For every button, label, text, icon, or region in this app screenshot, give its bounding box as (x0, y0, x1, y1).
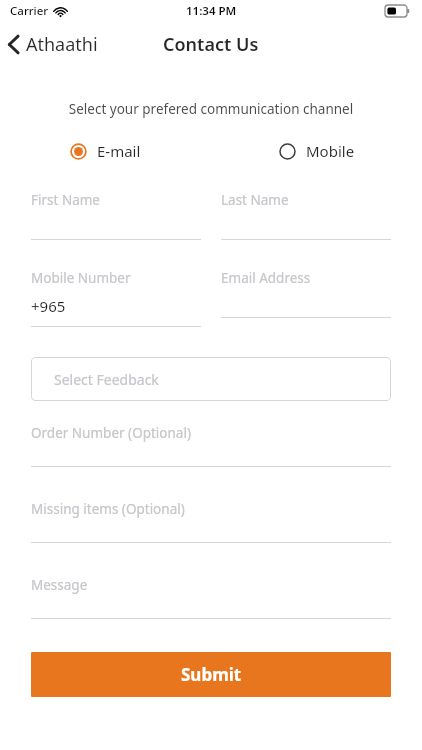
button[interactable]: Order Number (Optional) (31, 424, 391, 467)
staticText: Select Feedback (54, 370, 159, 389)
staticText: Message (31, 576, 88, 594)
staticText: 11:34 PM (186, 3, 237, 19)
staticText: Mobile Number (31, 269, 131, 287)
button[interactable]: Message (31, 576, 391, 619)
staticText: Order Number (Optional) (31, 424, 191, 442)
button[interactable]: Select Feedback (31, 357, 391, 401)
staticText: +965 (31, 296, 66, 316)
staticText: Carrier (10, 3, 49, 19)
staticText: Missing items (Optional) (31, 500, 185, 518)
button[interactable]: E-mail (64, 137, 147, 165)
button[interactable]: Mobile (273, 137, 361, 165)
staticText: Last Name (221, 191, 289, 209)
button[interactable]: Email Address (221, 269, 391, 318)
staticText: Submit (181, 663, 242, 686)
staticText: E-mail (97, 141, 141, 161)
button[interactable]: Last Name (221, 191, 391, 240)
staticText: Contact Us (163, 32, 259, 57)
staticText: Email Address (221, 269, 311, 287)
button[interactable]: Back to Athaathi (0, 26, 108, 63)
button[interactable]: First Name (31, 191, 201, 240)
staticText: Mobile (306, 141, 355, 161)
button[interactable]: Missing items (Optional) (31, 500, 391, 543)
button[interactable]: Mobile Number (31, 269, 201, 327)
staticText: First Name (31, 191, 100, 209)
button[interactable]: Submit (31, 652, 391, 697)
staticText: Athaathi (26, 32, 98, 57)
staticText: Select your prefered communication chann… (0, 100, 422, 118)
